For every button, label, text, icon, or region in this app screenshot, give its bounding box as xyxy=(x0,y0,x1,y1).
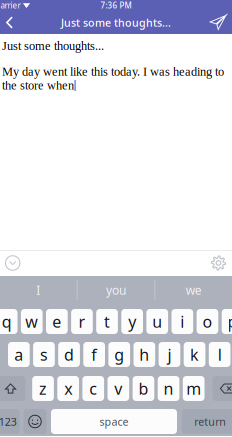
staticText: space xyxy=(99,414,128,429)
button[interactable]: b xyxy=(133,376,154,401)
staticText: c xyxy=(89,378,97,399)
button[interactable]: y xyxy=(121,309,143,334)
staticText: k xyxy=(190,344,199,365)
button[interactable]: I xyxy=(0,276,77,304)
staticText: t xyxy=(104,311,110,332)
button[interactable]: Settings xyxy=(206,250,231,276)
button[interactable]: space xyxy=(51,409,177,434)
staticText: i xyxy=(180,311,184,332)
staticText: s xyxy=(40,344,48,365)
button[interactable]: j xyxy=(159,342,180,367)
button[interactable]: i xyxy=(171,309,193,334)
button[interactable]: Hide keyboard xyxy=(0,250,25,276)
button[interactable]: v xyxy=(107,376,129,401)
button[interactable]: n xyxy=(158,376,179,401)
button[interactable]: Delete xyxy=(212,376,232,401)
button[interactable]: h xyxy=(133,342,155,367)
staticText: Just some thoughts... xyxy=(61,15,171,30)
button[interactable]: a xyxy=(8,342,30,367)
button[interactable]: c xyxy=(82,376,104,401)
staticText: you xyxy=(106,282,126,298)
button[interactable]: w xyxy=(21,309,43,334)
staticText: a xyxy=(14,344,23,365)
staticText: arrier xyxy=(0,0,20,11)
button[interactable]: Back xyxy=(0,11,19,34)
staticText: g xyxy=(114,344,124,365)
staticText: h xyxy=(139,344,149,365)
button[interactable]: q xyxy=(0,309,17,334)
staticText: 123 xyxy=(0,414,17,429)
button[interactable]: s xyxy=(33,342,55,367)
button[interactable]: e xyxy=(46,309,68,334)
staticText: q xyxy=(2,311,12,332)
staticText: l xyxy=(218,344,222,365)
button[interactable]: Shift xyxy=(0,376,25,401)
staticText: y xyxy=(128,311,136,332)
staticText: z xyxy=(39,378,47,399)
button[interactable]: f xyxy=(83,342,105,367)
staticText: j xyxy=(167,344,171,365)
staticText: w xyxy=(25,311,38,332)
button[interactable]: r xyxy=(71,309,93,334)
button[interactable]: u xyxy=(146,309,168,334)
button[interactable]: g xyxy=(108,342,130,367)
staticText: b xyxy=(138,378,148,399)
staticText: Just some thoughts... xyxy=(2,39,104,53)
button[interactable]: k xyxy=(184,342,205,367)
staticText: d xyxy=(64,344,74,365)
button[interactable]: we xyxy=(155,276,232,304)
staticText: My day went like this today. I was headi… xyxy=(2,65,224,92)
staticText: v xyxy=(114,378,122,399)
staticText: e xyxy=(52,311,61,332)
button[interactable]: z xyxy=(32,376,54,401)
button[interactable]: d xyxy=(58,342,80,367)
staticText: I xyxy=(36,282,40,298)
staticText: r xyxy=(78,311,85,332)
staticText: m xyxy=(186,378,201,399)
staticText: we xyxy=(186,282,202,298)
button[interactable]: m xyxy=(183,376,204,401)
staticText: p xyxy=(228,311,232,332)
staticText: f xyxy=(91,344,97,365)
staticText: u xyxy=(152,311,162,332)
button[interactable]: return xyxy=(182,409,232,434)
button[interactable]: l xyxy=(209,342,230,367)
button[interactable]: Emoji xyxy=(23,409,47,434)
staticText: return xyxy=(194,414,226,429)
staticText: o xyxy=(202,311,212,332)
button[interactable]: x xyxy=(57,376,79,401)
button[interactable]: 123 xyxy=(0,409,20,434)
button[interactable]: Send xyxy=(205,11,231,34)
button[interactable]: you xyxy=(78,276,154,304)
staticText: n xyxy=(164,378,174,399)
staticText: 7:36 PM xyxy=(100,0,131,11)
button[interactable]: p xyxy=(222,309,232,334)
staticText: x xyxy=(64,378,72,399)
button[interactable]: t xyxy=(96,309,118,334)
button[interactable]: o xyxy=(197,309,218,334)
